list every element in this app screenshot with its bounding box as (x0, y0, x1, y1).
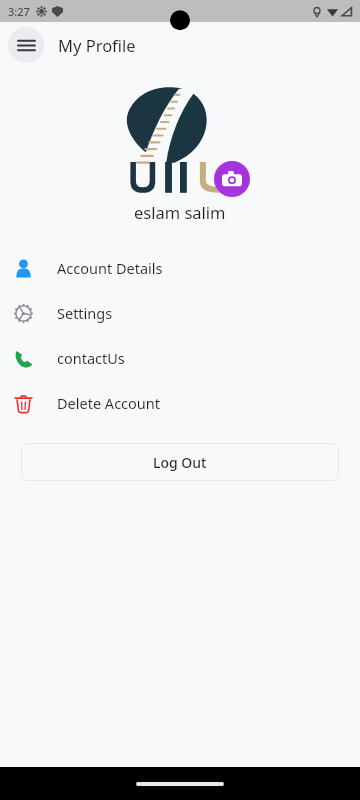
button[interactable]: Open navigation menu (8, 27, 44, 63)
button[interactable]: Log Out (21, 443, 339, 481)
button[interactable]: contactUs (0, 335, 360, 380)
staticText: Account Details (57, 258, 163, 278)
button[interactable]: Account Details (0, 245, 360, 290)
button[interactable]: Settings (0, 290, 360, 335)
staticText: 3:27 (8, 4, 30, 19)
staticText: eslam salim (134, 201, 226, 223)
staticText: My Profile (58, 34, 136, 56)
staticText: Log Out (153, 453, 207, 472)
staticText: Settings (57, 303, 113, 323)
button[interactable]: Delete Account (0, 380, 360, 425)
staticText: contactUs (57, 348, 125, 368)
staticText: Delete Account (57, 393, 160, 413)
button[interactable]: Change profile photo (214, 161, 250, 197)
